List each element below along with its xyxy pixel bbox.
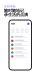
- staticText: 随时随地记: [4, 8, 24, 13]
- staticText: 录生活的点滴: [4, 12, 28, 17]
- staticText: 全新体验: [4, 5, 16, 8]
